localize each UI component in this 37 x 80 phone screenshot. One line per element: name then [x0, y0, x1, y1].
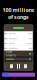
button[interactable]	[2, 46, 35, 51]
staticText: now playing	[6, 50, 16, 57]
button[interactable]: Play	[13, 27, 24, 29]
button[interactable]: Previous	[10, 64, 13, 68]
button[interactable]: Next	[24, 64, 27, 68]
button[interactable]: Pause	[17, 64, 20, 69]
button[interactable]	[2, 36, 35, 41]
button[interactable]	[2, 31, 35, 36]
staticText: of songs	[8, 13, 29, 20]
staticText: 100 millions	[2, 6, 34, 13]
button[interactable]	[2, 41, 35, 46]
